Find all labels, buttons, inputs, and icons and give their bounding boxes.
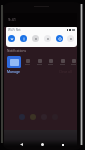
button[interactable]: App 5 (69, 59, 77, 68)
button[interactable]: Bluetooth (20, 35, 27, 42)
button[interactable]: Flashlight (44, 35, 51, 42)
staticText: Clear all (59, 69, 72, 74)
staticText: Wi-Fi Net (8, 28, 21, 32)
button[interactable]: Recents (57, 139, 68, 150)
button[interactable]: Battery saver (67, 35, 74, 42)
button[interactable]: Manage (7, 69, 20, 74)
button[interactable]: App 3 (46, 59, 54, 68)
staticText: Manage (7, 69, 20, 74)
button[interactable]: Do not disturb (32, 35, 39, 42)
button[interactable]: Dock app 1 (19, 114, 25, 120)
button[interactable]: Clear all (59, 69, 72, 74)
button[interactable]: Media notification (7, 56, 21, 68)
staticText: 9:41 (8, 17, 16, 22)
button[interactable]: Back (16, 139, 27, 150)
staticText: Notifications (7, 49, 26, 53)
button[interactable]: Dock app 2 (30, 114, 36, 120)
button[interactable]: App 2 (35, 59, 43, 68)
button[interactable]: Auto rotate (56, 35, 63, 42)
button[interactable]: Wi-Fi (8, 35, 15, 42)
button[interactable]: App 1 (23, 59, 31, 68)
button[interactable]: Home (37, 139, 48, 150)
button[interactable]: App 4 (58, 59, 66, 68)
